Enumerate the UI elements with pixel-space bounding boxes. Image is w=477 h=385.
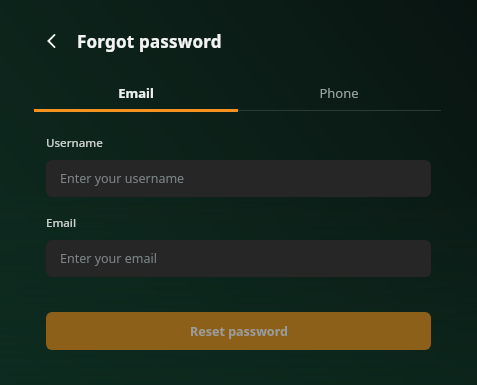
staticText: Enter your email — [60, 250, 157, 267]
button[interactable]: Back — [38, 27, 66, 55]
button[interactable]: Enter your email — [46, 240, 431, 277]
button[interactable]: Email — [34, 81, 237, 104]
button[interactable]: Reset password — [46, 312, 431, 350]
button[interactable]: Enter your username — [46, 160, 431, 197]
staticText: Email — [118, 84, 154, 102]
staticText: Phone — [319, 84, 359, 102]
button[interactable]: Phone — [237, 81, 441, 104]
staticText: Forgot password — [77, 30, 222, 53]
staticText: Enter your username — [60, 170, 185, 187]
staticText: Username — [46, 135, 103, 151]
staticText: Reset password — [190, 323, 288, 340]
staticText: Email — [46, 215, 77, 231]
